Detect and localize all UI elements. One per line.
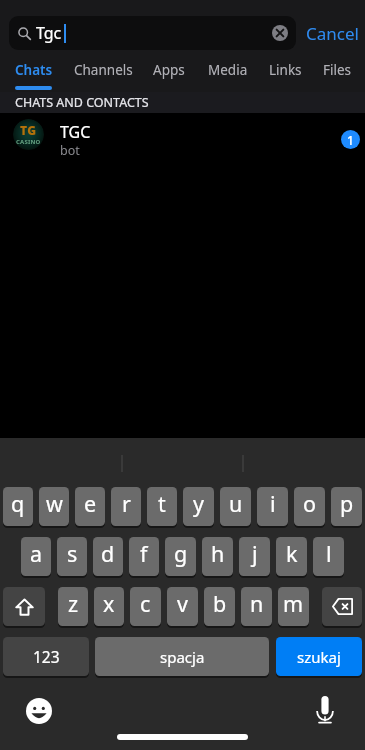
button[interactable]: x bbox=[94, 587, 124, 626]
staticText: j bbox=[252, 539, 258, 568]
button[interactable]: Files bbox=[316, 57, 359, 92]
button[interactable]: Tgc bbox=[9, 16, 296, 50]
staticText: CHATS AND CONTACTS bbox=[15, 94, 149, 111]
staticText: h bbox=[211, 539, 225, 568]
staticText: d bbox=[101, 539, 115, 568]
button[interactable]: l bbox=[313, 537, 344, 576]
staticText: i bbox=[270, 489, 276, 518]
button[interactable]: Chats bbox=[10, 57, 57, 92]
staticText: s bbox=[67, 539, 78, 568]
button[interactable]: Emoji keyboard bbox=[26, 698, 52, 724]
staticText: m bbox=[283, 589, 304, 618]
staticText: Tgc bbox=[36, 22, 62, 44]
staticText: w bbox=[46, 489, 63, 518]
staticText: TG bbox=[20, 122, 37, 138]
staticText: u bbox=[229, 489, 243, 518]
button[interactable]: s bbox=[57, 537, 87, 576]
button[interactable]: f bbox=[129, 537, 159, 576]
button[interactable]: j bbox=[239, 537, 270, 576]
staticText: Chats bbox=[15, 61, 53, 79]
button[interactable]: spacja bbox=[95, 637, 269, 676]
button[interactable]: szukaj bbox=[276, 637, 362, 676]
staticText: Cancel bbox=[306, 22, 359, 45]
staticText: v bbox=[177, 589, 188, 618]
button[interactable]: g bbox=[165, 537, 196, 576]
staticText: g bbox=[174, 539, 188, 568]
staticText: z bbox=[68, 589, 79, 618]
button[interactable]: p bbox=[331, 487, 362, 526]
staticText: l bbox=[326, 539, 332, 568]
staticText: x bbox=[103, 589, 115, 618]
staticText: TGC bbox=[60, 121, 91, 143]
staticText: t bbox=[158, 489, 166, 518]
button[interactable]: r bbox=[111, 487, 141, 526]
button[interactable]: a bbox=[21, 537, 51, 576]
button[interactable]: b bbox=[204, 587, 235, 626]
staticText: Channels bbox=[74, 61, 133, 79]
staticText: e bbox=[84, 489, 97, 518]
button[interactable]: Channels bbox=[68, 57, 138, 92]
button[interactable]: Links bbox=[263, 57, 308, 92]
button[interactable]: m bbox=[278, 587, 309, 626]
button[interactable]: y bbox=[183, 487, 214, 526]
staticText: 123 bbox=[33, 646, 60, 667]
button[interactable]: d bbox=[93, 537, 123, 576]
staticText: CASINO bbox=[16, 138, 41, 146]
button[interactable]: q bbox=[3, 487, 33, 526]
button[interactable]: o bbox=[294, 487, 325, 526]
staticText: a bbox=[30, 539, 43, 568]
button[interactable]: Backspace bbox=[322, 587, 362, 626]
staticText: o bbox=[303, 489, 317, 518]
button[interactable]: Media bbox=[203, 57, 252, 92]
button[interactable]: 123 bbox=[3, 637, 89, 676]
staticText: spacja bbox=[160, 647, 205, 667]
staticText: k bbox=[286, 539, 298, 568]
staticText: c bbox=[140, 589, 151, 618]
staticText: szukaj bbox=[297, 647, 341, 667]
button[interactable]: h bbox=[202, 537, 233, 576]
button[interactable]: v bbox=[167, 587, 198, 626]
staticText: Links bbox=[269, 61, 302, 79]
button[interactable]: w bbox=[39, 487, 69, 526]
staticText: n bbox=[250, 589, 264, 618]
staticText: Files bbox=[323, 61, 352, 79]
button[interactable]: t bbox=[147, 487, 177, 526]
button[interactable]: c bbox=[130, 587, 161, 626]
staticText: b bbox=[213, 589, 227, 618]
button[interactable]: z bbox=[58, 587, 88, 626]
staticText: r bbox=[122, 489, 131, 518]
button[interactable]: e bbox=[75, 487, 105, 526]
button[interactable]: Apps bbox=[148, 57, 190, 92]
button[interactable]: i bbox=[257, 487, 288, 526]
button[interactable]: TG bbox=[0, 113, 365, 159]
staticText: bot bbox=[60, 142, 80, 159]
staticText: f bbox=[140, 539, 148, 568]
staticText: 1 bbox=[347, 132, 354, 148]
button[interactable]: Clear text bbox=[272, 25, 288, 41]
staticText: y bbox=[193, 489, 204, 518]
staticText: q bbox=[11, 489, 25, 518]
staticText: Apps bbox=[153, 61, 185, 79]
button[interactable]: Cancel bbox=[300, 16, 365, 50]
button[interactable]: k bbox=[276, 537, 307, 576]
button[interactable]: Shift bbox=[3, 587, 45, 626]
staticText: Media bbox=[208, 61, 248, 79]
staticText: p bbox=[340, 489, 354, 518]
button[interactable]: u bbox=[220, 487, 251, 526]
button[interactable]: Dictate bbox=[316, 696, 334, 724]
button[interactable]: n bbox=[241, 587, 272, 626]
